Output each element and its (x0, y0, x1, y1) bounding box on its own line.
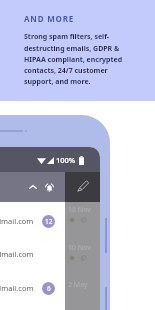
staticText: 18 Nov (68, 205, 91, 215)
staticText: 6 (47, 284, 51, 293)
staticText: hello@goodmail.com (0, 249, 34, 259)
button[interactable]: Collapse (24, 178, 42, 196)
staticText: contact@goodmail.com (0, 216, 34, 226)
button[interactable]: hello@goodmail.com (0, 243, 65, 265)
staticText: Strong spam filters, self- destructing e… (24, 32, 123, 86)
staticText: 100% (56, 155, 76, 165)
staticText: AND MORE (24, 13, 74, 24)
staticText: 2 May (68, 280, 88, 290)
button[interactable]: Compose (75, 177, 91, 193)
staticText: 10 Nov (68, 243, 91, 253)
button[interactable]: contact@goodmail.com (0, 210, 65, 232)
button[interactable]: Notifications (40, 178, 58, 196)
staticText: 12 (45, 217, 53, 226)
staticText: team@goodmail.com (0, 283, 34, 293)
button[interactable]: team@goodmail.com (0, 277, 65, 299)
